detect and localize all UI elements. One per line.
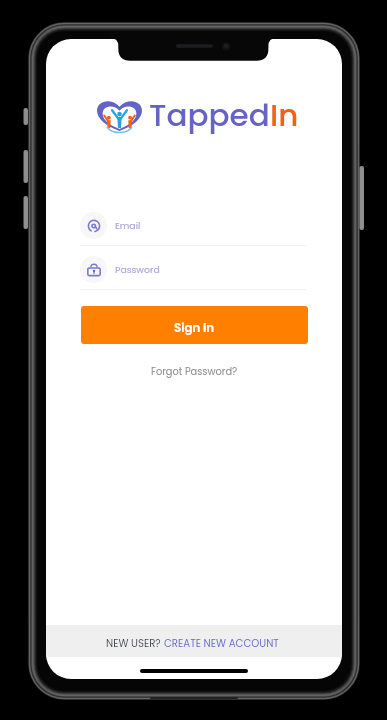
staticText: Tapped (149, 93, 270, 136)
button[interactable]: Forgot Password? (151, 365, 238, 379)
staticText: NEW USER? (106, 636, 164, 650)
button[interactable]: Sign In (81, 306, 308, 344)
staticText: Sign In (174, 320, 215, 337)
staticText: Password (115, 263, 160, 276)
button[interactable]: CREATE NEW ACCOUNT (164, 636, 279, 650)
staticText: In (270, 93, 299, 136)
staticText: Email (115, 219, 141, 232)
button[interactable]: Email (80, 209, 307, 246)
button[interactable]: Password (80, 253, 307, 290)
